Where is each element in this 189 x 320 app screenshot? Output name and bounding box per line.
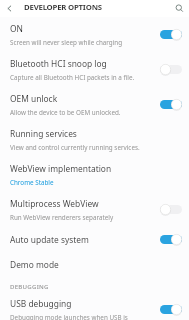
- button[interactable]: Bluetooth HCI snoop log: [0, 52, 189, 87]
- staticText: Running services: [10, 128, 77, 139]
- button[interactable]: On: [160, 304, 182, 315]
- staticText: Run WebView renderers separately: [10, 213, 114, 222]
- staticText: DEBUGGING: [10, 282, 49, 290]
- button[interactable]: ON: [0, 17, 189, 52]
- button[interactable]: USB debugging: [0, 298, 189, 320]
- button[interactable]: Auto update system: [0, 227, 189, 252]
- button[interactable]: Search: [169, 0, 189, 17]
- staticText: Demo mode: [10, 259, 59, 270]
- staticText: DEVELOPER OPTIONS: [24, 2, 102, 13]
- button[interactable]: On: [160, 29, 182, 40]
- staticText: View and control currently running servi…: [10, 143, 140, 152]
- staticText: Multiprocess WebView: [10, 198, 99, 209]
- staticText: ON: [10, 23, 23, 34]
- button[interactable]: Multiprocess WebView: [0, 192, 189, 227]
- button[interactable]: Off: [160, 204, 182, 215]
- button[interactable]: Back: [0, 0, 18, 17]
- staticText: Capture all Bluetooth HCI packets in a f…: [10, 73, 135, 82]
- staticText: Debugging mode launches when USB is: [10, 313, 128, 320]
- staticText: Chrome Stable: [10, 178, 54, 187]
- staticText: Screen will never sleep while charging: [10, 38, 123, 47]
- staticText: Auto update system: [10, 234, 89, 245]
- button[interactable]: OEM unlock: [0, 87, 189, 122]
- staticText: Bluetooth HCI snoop log: [10, 58, 107, 69]
- button[interactable]: Running services: [0, 122, 189, 157]
- button[interactable]: Off: [160, 64, 182, 75]
- button[interactable]: Demo mode: [0, 252, 189, 277]
- button[interactable]: WebView implementation: [0, 157, 189, 192]
- staticText: USB debugging: [10, 298, 72, 309]
- button[interactable]: On: [160, 234, 182, 245]
- staticText: Allow the device to be OEM unlocked.: [10, 108, 121, 117]
- button[interactable]: On: [160, 99, 182, 110]
- staticText: OEM unlock: [10, 93, 58, 104]
- staticText: WebView implementation: [10, 163, 112, 174]
